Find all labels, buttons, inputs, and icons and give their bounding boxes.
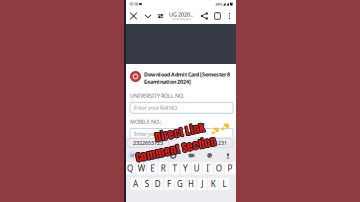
staticText: Q xyxy=(127,163,133,174)
staticText: Comment Section xyxy=(135,140,217,158)
staticText: Direct Link xyxy=(154,124,205,141)
button[interactable]: Downloads xyxy=(141,8,155,24)
staticText: 3 xyxy=(154,163,156,167)
staticText: L xyxy=(222,179,226,189)
staticText: H xyxy=(188,179,194,189)
staticText: Direct Link xyxy=(155,124,206,141)
button[interactable]: Tabs xyxy=(211,8,224,24)
button[interactable]: Keyboard switcher xyxy=(128,151,137,160)
staticText: U xyxy=(194,163,200,174)
staticText: Direct Link xyxy=(154,123,205,140)
staticText: Comment Section xyxy=(136,140,218,157)
staticText: 2 xyxy=(142,163,144,167)
staticText: 7 xyxy=(198,163,200,167)
staticText: W xyxy=(138,163,145,174)
staticText: D xyxy=(155,179,161,189)
staticText: I xyxy=(206,163,209,174)
button[interactable]: Close xyxy=(126,8,141,24)
staticText: MOBILE NO.: xyxy=(130,118,161,125)
staticText: P xyxy=(227,163,232,174)
staticText: Comment Section xyxy=(136,141,218,158)
staticText: A xyxy=(133,179,138,189)
staticText: UG 2020... xyxy=(169,11,193,18)
staticText: UNIVERSITY ROLL NO. xyxy=(130,92,184,99)
staticText: G xyxy=(177,179,183,189)
staticText: Direct Link xyxy=(154,123,205,141)
button[interactable]: GIF xyxy=(188,152,194,158)
staticText: 6 xyxy=(187,163,189,167)
staticText: Comment Section xyxy=(135,140,217,157)
staticText: Direct Link xyxy=(155,123,206,141)
button[interactable]: More options xyxy=(224,8,235,24)
staticText: 34% xyxy=(215,1,222,7)
staticText: Comment Section xyxy=(134,140,216,157)
staticText: Enter your Mobile NO. xyxy=(134,130,186,137)
button[interactable]: Share xyxy=(198,8,211,24)
staticText: E xyxy=(150,163,154,174)
staticText: Comment Section xyxy=(135,141,217,158)
staticText: S xyxy=(145,179,149,189)
button[interactable]: Settings xyxy=(170,152,176,158)
staticText: 10:18 xyxy=(129,1,138,7)
staticText: 9 xyxy=(220,163,222,167)
button[interactable]: Page settings xyxy=(155,8,166,24)
staticText: F xyxy=(167,179,171,189)
staticText: Comment Section xyxy=(134,140,216,158)
staticText: 0 xyxy=(231,163,233,167)
button[interactable]: Stickers xyxy=(207,152,213,158)
button[interactable]: 2322653723 xyxy=(127,138,169,147)
staticText: R xyxy=(161,163,166,174)
staticText: O xyxy=(216,163,222,174)
staticText: Direct Link xyxy=(154,123,205,141)
button[interactable]: 252101231 xyxy=(194,138,233,147)
staticText: 2322653723 xyxy=(133,139,163,147)
staticText: Direct Link xyxy=(155,123,206,140)
staticText: Comment Section xyxy=(136,140,218,158)
staticText: 4 xyxy=(165,163,167,167)
staticText: Enter your Roll NO. xyxy=(134,104,178,111)
staticText: Direct Link xyxy=(154,124,205,141)
staticText: 252101231 xyxy=(200,139,227,147)
staticText: Direct Link xyxy=(154,123,205,140)
staticText: T xyxy=(172,163,176,174)
staticText: 8 xyxy=(209,163,211,167)
staticText: 5 xyxy=(176,163,178,167)
staticText: T xyxy=(151,151,155,160)
staticText: K xyxy=(211,179,216,189)
button[interactable]: Translate xyxy=(149,151,158,160)
staticText: Download Admit Card [Semester 8 Examinat… xyxy=(144,71,230,85)
staticText: university.com xyxy=(171,17,190,21)
staticText: Comment Section xyxy=(134,141,216,158)
staticText: 1 xyxy=(131,163,133,167)
button[interactable]: Voice input xyxy=(225,152,231,158)
staticText: J xyxy=(201,179,203,189)
staticText: Y xyxy=(183,163,188,174)
